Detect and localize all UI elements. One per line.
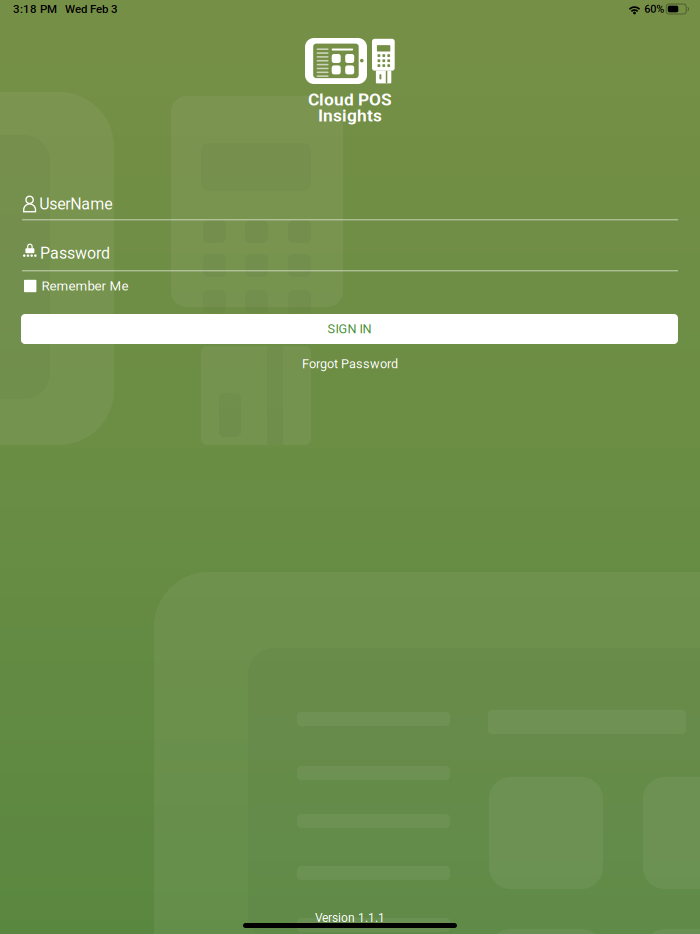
- staticText: Cloud POS: [308, 89, 392, 110]
- staticText: 60%: [644, 3, 664, 15]
- staticText: Version 1.1.1: [315, 911, 385, 925]
- staticText: Password: [40, 244, 110, 263]
- staticText: SIGN IN: [327, 322, 371, 336]
- staticText: 3:18 PM: [13, 2, 57, 16]
- staticText: Remember Me: [41, 278, 128, 294]
- staticText: Insights: [318, 105, 382, 126]
- button[interactable]: Forgot Password: [0, 355, 700, 373]
- button[interactable]: SIGN IN: [21, 314, 678, 344]
- button[interactable]: Remember Me: [0, 276, 320, 296]
- staticText: Forgot Password: [302, 357, 398, 371]
- staticText: Wed Feb 3: [65, 2, 118, 16]
- staticText: UserName: [39, 195, 112, 213]
